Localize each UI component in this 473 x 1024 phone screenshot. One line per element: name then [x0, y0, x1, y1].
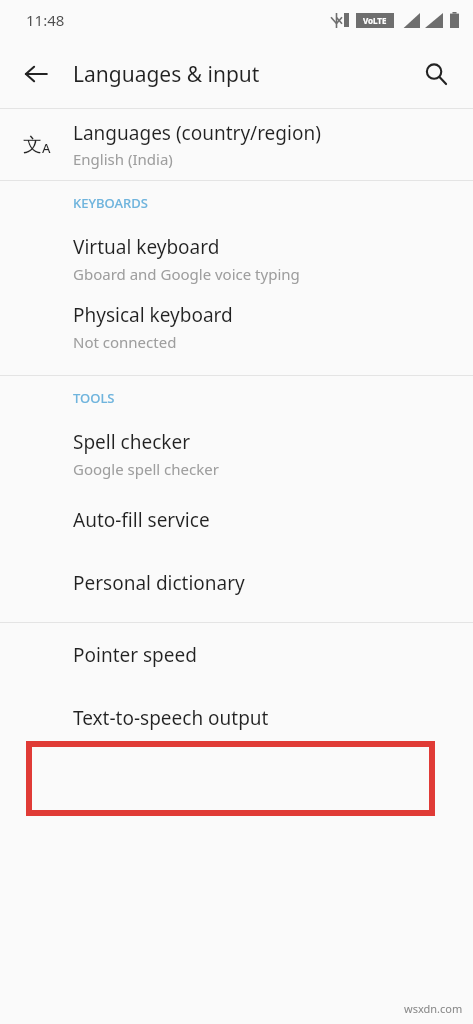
staticText: Spell checker [73, 429, 190, 455]
staticText: wsxdn.com [404, 1001, 463, 1016]
staticText: Personal dictionary [73, 570, 245, 596]
staticText: Virtual keyboard [73, 234, 220, 260]
staticText: Languages (country/region) [73, 120, 321, 146]
staticText: KEYBOARDS [73, 194, 148, 212]
staticText: English (India) [73, 149, 173, 169]
button[interactable]: 文 [0, 109, 473, 180]
button[interactable]: Pointer speed [0, 623, 473, 686]
button[interactable]: Virtual keyboard [0, 225, 473, 293]
staticText: 11:48 [26, 10, 65, 30]
staticText: Auto-fill service [73, 507, 210, 533]
staticText: Text-to-speech output [73, 705, 269, 731]
staticText: Gboard and Google voice typing [73, 264, 300, 284]
staticText: A [42, 139, 51, 157]
button[interactable]: Spell checker [0, 420, 473, 488]
staticText: 文 [23, 133, 42, 157]
staticText: VoLTE [363, 15, 387, 26]
button[interactable]: Personal dictionary [0, 551, 473, 614]
staticText: Not connected [73, 332, 177, 352]
button[interactable]: Back [13, 51, 59, 97]
staticText: TOOLS [73, 389, 115, 407]
staticText: Pointer speed [73, 642, 197, 668]
button[interactable]: Physical keyboard [0, 293, 473, 361]
button[interactable]: Auto-fill service [0, 488, 473, 551]
button[interactable]: Text-to-speech output [0, 686, 473, 749]
staticText: Languages & input [73, 60, 413, 89]
staticText: Google spell checker [73, 459, 219, 479]
staticText: Physical keyboard [73, 302, 233, 328]
button[interactable]: Search [413, 51, 459, 97]
